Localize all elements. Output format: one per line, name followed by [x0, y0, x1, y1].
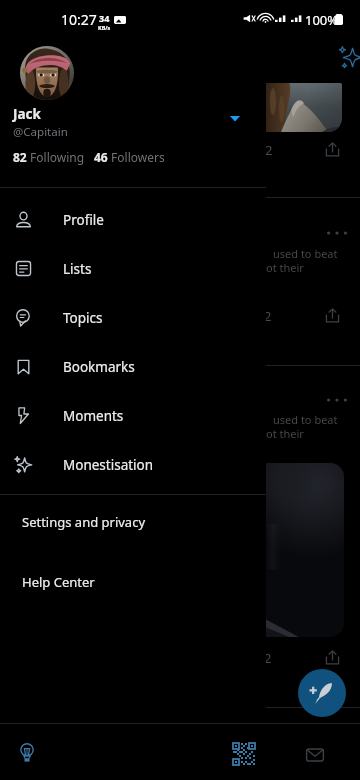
button[interactable]: Monestisation: [0, 440, 266, 489]
button[interactable]: Profile photo: [20, 46, 74, 100]
staticText: 100%: [305, 11, 339, 29]
staticText: used to beat: [273, 246, 338, 261]
staticText: Bookmarks: [63, 358, 135, 376]
staticText: used to beat: [273, 412, 338, 427]
staticText: Topics: [63, 309, 103, 327]
button[interactable]: Dark mode: [20, 743, 34, 762]
button[interactable]: Profile: [0, 195, 266, 244]
staticText: KB/s: [98, 24, 111, 31]
button[interactable]: Lists: [0, 244, 266, 293]
staticText: ot their: [266, 260, 304, 275]
button[interactable]: Messages: [305, 745, 325, 765]
staticText: Jack: [13, 105, 41, 123]
staticText: Following: [27, 149, 85, 165]
staticText: Monestisation: [63, 456, 154, 474]
staticText: 34: [99, 12, 110, 24]
button[interactable]: QR code: [233, 743, 255, 763]
staticText: @Capitain: [13, 124, 68, 140]
staticText: Lists: [63, 260, 92, 278]
staticText: Profile: [63, 211, 104, 229]
staticText: ot their: [266, 426, 304, 441]
staticText: 2: [264, 307, 272, 325]
button[interactable]: Topics: [0, 293, 266, 342]
staticText: 2: [264, 649, 272, 667]
button[interactable]: Compose Tweet: [298, 669, 346, 717]
staticText: 82: [13, 149, 27, 165]
button[interactable]: Settings and privacy: [0, 502, 266, 544]
staticText: 10:27: [61, 10, 97, 29]
button[interactable]: Bookmarks: [0, 342, 266, 391]
button[interactable]: Switch account: [227, 110, 243, 126]
staticText: Moments: [63, 407, 124, 425]
staticText: 2: [265, 141, 273, 159]
staticText: Followers: [108, 149, 165, 165]
staticText: Settings and privacy: [22, 513, 146, 531]
staticText: 46: [94, 149, 108, 165]
button[interactable]: Help Center: [0, 562, 266, 604]
button[interactable]: Moments: [0, 391, 266, 440]
staticText: Help Center: [22, 573, 95, 591]
